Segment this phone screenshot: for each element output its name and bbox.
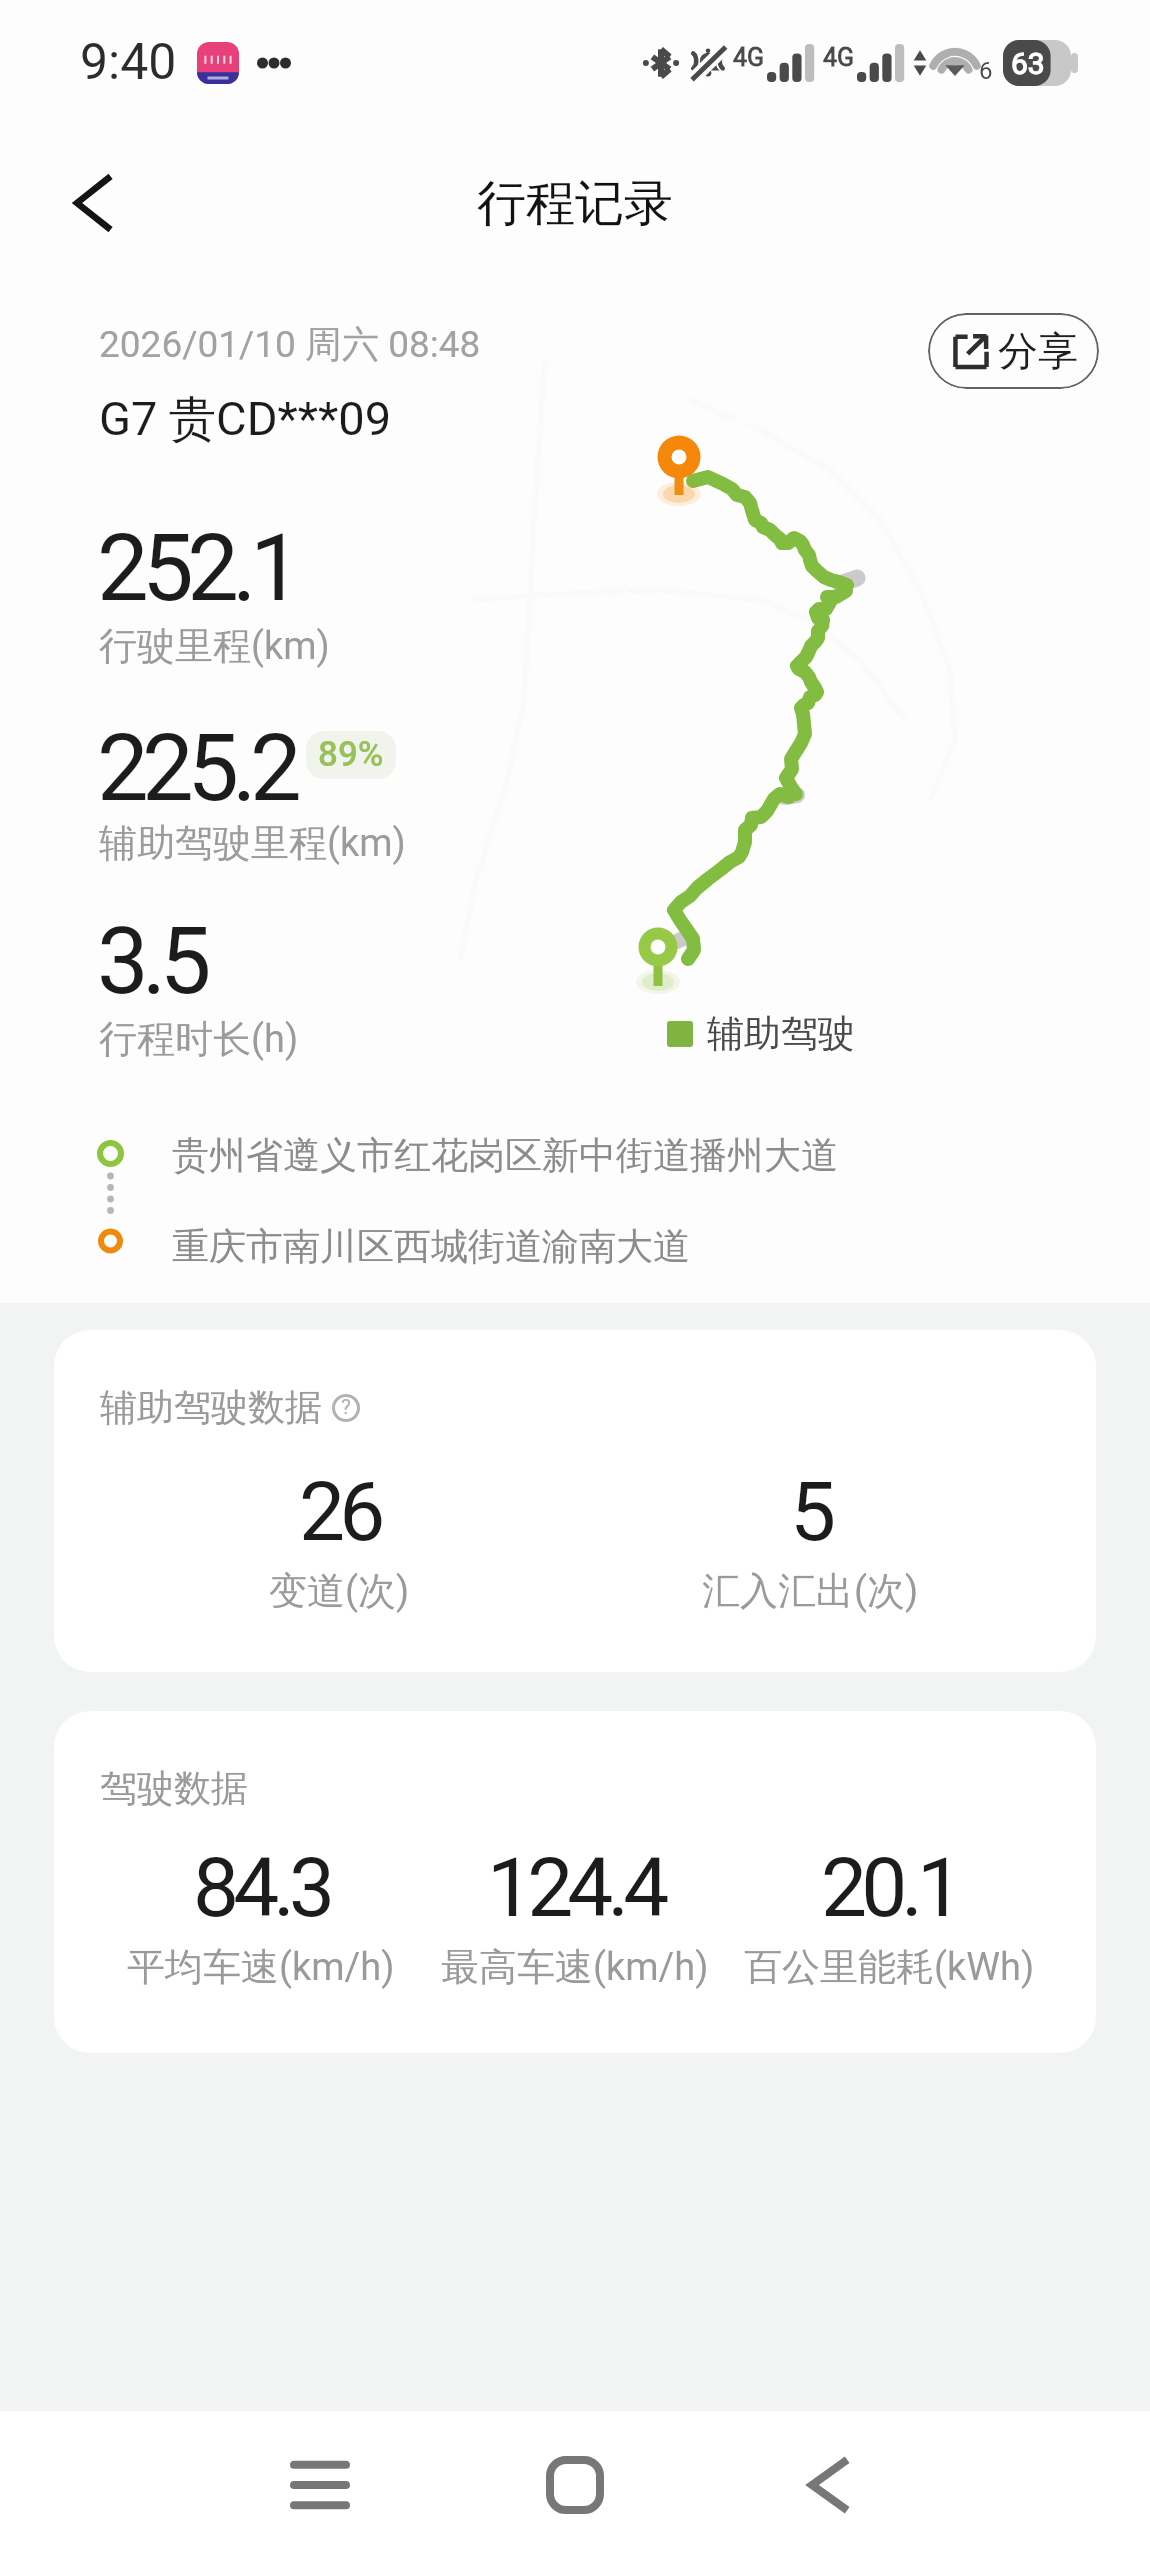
staticText: 20.1 (821, 1840, 958, 1936)
staticText: 辅助驾驶数据 (100, 1384, 322, 1431)
button[interactable]: 驾驶数据 (54, 1711, 1096, 2053)
button[interactable]: 重庆市南川区西城街道渝南大道 (90, 1213, 870, 1275)
button[interactable]: 辅助驾驶数据 (54, 1330, 1096, 1672)
staticText: 辅助驾驶里程(km) (99, 819, 406, 867)
staticText: 225.2 (97, 715, 295, 823)
staticText: 变道(次) (269, 1567, 410, 1615)
button[interactable]: Back (42, 153, 142, 253)
button[interactable]: 贵州省遵义市红花岗区新中街道播州大道 (90, 1122, 870, 1184)
staticText: 3.5 (97, 908, 205, 1016)
staticText: 124.4 (487, 1840, 664, 1936)
button[interactable]: Recent apps (260, 2411, 380, 2559)
staticText: 最高车速(km/h) (441, 1943, 709, 1991)
staticText: 行程时长(h) (99, 1015, 299, 1063)
staticText: 84.3 (193, 1840, 330, 1936)
staticText: 驾驶数据 (100, 1765, 248, 1812)
staticText: 6 (979, 57, 993, 85)
staticText: 百公里能耗(kWh) (744, 1943, 1035, 1991)
staticText: 汇入汇出(次) (702, 1567, 919, 1615)
staticText: 9:40 (80, 33, 177, 92)
staticText: 辅助驾驶 (707, 1010, 855, 1057)
staticText: 5 (790, 1464, 831, 1560)
staticText: 贵州省遵义市红花岗区新中街道播州大道 (172, 1132, 838, 1179)
staticText: 行驶里程(km) (99, 622, 330, 670)
button[interactable]: 分享 (928, 313, 1099, 389)
staticText: 4G (733, 43, 765, 72)
staticText: 26 (299, 1464, 380, 1560)
staticText: G7 贵CD***09 (99, 390, 392, 449)
staticText: 89% (318, 734, 384, 775)
staticText: 平均车速(km/h) (127, 1943, 395, 1991)
staticText: 重庆市南川区西城街道渝南大道 (172, 1223, 690, 1270)
staticText: 行程记录 (477, 173, 673, 235)
staticText: 4G (823, 43, 855, 72)
staticText: 252.1 (97, 515, 295, 623)
staticText: 2026/01/10 周六 08:48 (99, 321, 481, 368)
staticText: ? (341, 1395, 351, 1420)
button[interactable]: Back (768, 2411, 888, 2559)
staticText: 分享 (998, 326, 1078, 376)
staticText: 63 (1011, 46, 1045, 81)
button[interactable]: Home (515, 2411, 635, 2559)
